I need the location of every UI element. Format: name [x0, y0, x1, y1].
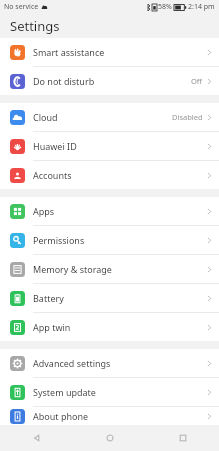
staticText: System update [33, 386, 207, 398]
button[interactable]: Battery [0, 284, 219, 312]
button[interactable]: App twin [0, 313, 219, 341]
staticText: Do not disturb [33, 75, 191, 87]
staticText: Settings [10, 17, 60, 35]
button[interactable]: Accounts [0, 161, 219, 189]
button[interactable]: System update [0, 378, 219, 406]
button[interactable]: Recent apps [146, 425, 219, 451]
staticText: Memory & storage [33, 263, 207, 275]
staticText: Battery [33, 292, 207, 304]
button[interactable]: Back [0, 425, 73, 451]
staticText: Apps [33, 205, 207, 217]
staticText: Huawei ID [33, 140, 207, 152]
button[interactable]: Advanced settings [0, 349, 219, 377]
button[interactable]: Apps [0, 197, 219, 225]
button[interactable]: Memory & storage [0, 255, 219, 283]
button[interactable]: Cloud [0, 103, 219, 131]
staticText: Smart assistance [33, 46, 207, 58]
button[interactable]: About phone [0, 407, 219, 425]
staticText: 2:14 pm [188, 2, 215, 12]
button[interactable]: Do not disturb [0, 67, 219, 95]
button[interactable]: Permissions [0, 226, 219, 254]
staticText: App twin [33, 321, 207, 333]
staticText: Off [191, 76, 203, 86]
staticText: Permissions [33, 234, 207, 246]
staticText: No service [4, 2, 39, 12]
button[interactable]: Home [73, 425, 146, 451]
staticText: 58% [158, 2, 172, 12]
staticText: Cloud [33, 111, 172, 123]
staticText: Disabled [172, 112, 203, 122]
staticText: About phone [33, 410, 207, 422]
staticText: Advanced settings [33, 357, 207, 369]
button[interactable]: Smart assistance [0, 38, 219, 66]
staticText: Accounts [33, 169, 207, 181]
button[interactable]: Huawei ID [0, 132, 219, 160]
